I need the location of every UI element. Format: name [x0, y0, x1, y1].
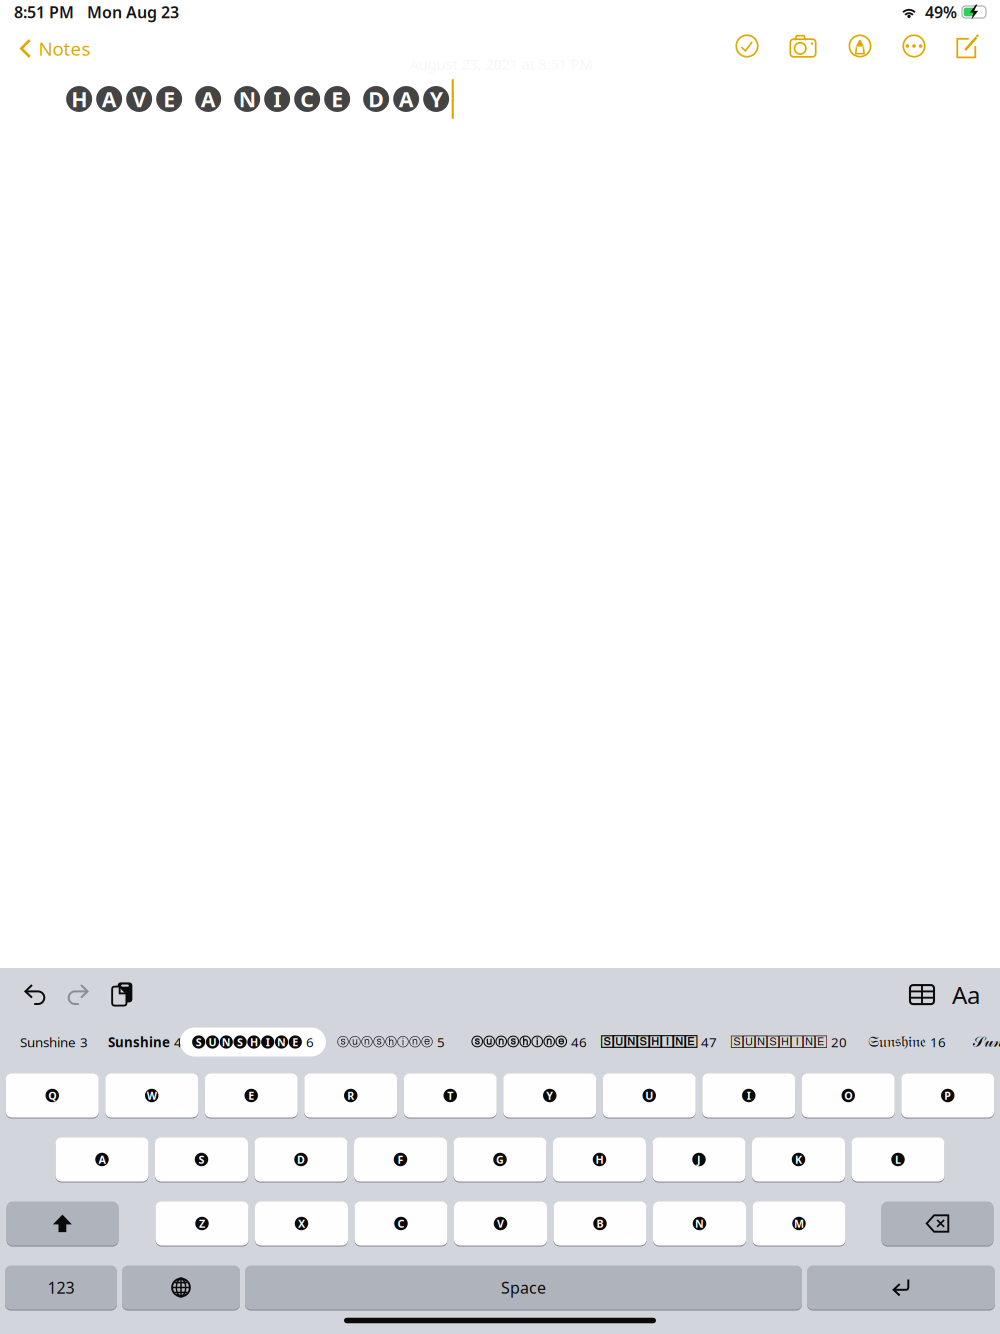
button[interactable]: H: [553, 1137, 646, 1181]
staticText: V: [132, 85, 146, 113]
staticText: A: [399, 85, 414, 113]
staticText: Mon Aug 23: [87, 1, 179, 23]
staticText: 3: [80, 1033, 88, 1051]
staticText: A: [201, 85, 216, 113]
button[interactable]: Return: [807, 1265, 995, 1309]
button[interactable]: New note: [947, 25, 989, 67]
staticText: N: [239, 85, 256, 113]
staticText: 47: [701, 1033, 717, 1051]
button[interactable]: ⓢⓤⓝⓢⓗⓘⓝⓔ: [335, 1027, 447, 1056]
button[interactable]: Next keyboard: [122, 1265, 240, 1309]
staticText: B: [596, 1216, 603, 1231]
button[interactable]: G: [453, 1137, 546, 1181]
button[interactable]: Space: [245, 1265, 802, 1309]
staticText: P: [944, 1088, 951, 1103]
staticText: O: [844, 1088, 852, 1103]
button[interactable]: Sunshine: [18, 1027, 90, 1056]
staticText: H: [71, 85, 87, 113]
button[interactable]: U: [603, 1073, 696, 1117]
button[interactable]: Done: [726, 25, 768, 67]
button[interactable]: Redo: [60, 977, 96, 1013]
button[interactable]: O: [802, 1073, 895, 1117]
button[interactable]: T: [404, 1073, 497, 1117]
button[interactable]: Insert photo: [782, 25, 824, 67]
staticText: I: [273, 85, 281, 113]
button[interactable]: N: [653, 1201, 746, 1245]
button[interactable]: D: [254, 1137, 347, 1181]
button[interactable]: ⓢⓤⓝⓢⓗⓘⓝⓔ: [469, 1027, 589, 1056]
button[interactable]: Notes: [8, 28, 102, 68]
staticText: 49%: [925, 1, 957, 23]
staticText: V: [497, 1216, 504, 1231]
staticText: T: [447, 1088, 453, 1103]
staticText: E: [292, 1035, 298, 1049]
staticText: A: [98, 1152, 105, 1167]
button[interactable]: F: [354, 1137, 447, 1181]
button[interactable]: K: [752, 1137, 845, 1181]
button[interactable]: Markup: [839, 25, 881, 67]
button[interactable]: E: [205, 1073, 298, 1117]
button[interactable]: C: [354, 1201, 447, 1245]
staticText: R: [347, 1088, 354, 1103]
staticText: E: [163, 85, 175, 113]
button[interactable]: Insert table: [904, 977, 940, 1013]
staticText: Q: [48, 1088, 56, 1103]
button[interactable]: V: [454, 1201, 547, 1245]
staticText: D: [297, 1152, 305, 1167]
button[interactable]: Z: [155, 1201, 248, 1245]
staticText: S: [196, 1035, 202, 1049]
button[interactable]: 🅂🅄🄽🅂🄷🄸🄽🄴: [599, 1027, 719, 1056]
staticText: 𝒮𝓊𝓃: [972, 1034, 1000, 1050]
button[interactable]: Paste: [104, 977, 140, 1013]
staticText: Z: [199, 1216, 205, 1231]
staticText: 16: [930, 1033, 946, 1051]
button[interactable]: Shift: [6, 1201, 118, 1245]
button[interactable]: Undo: [17, 977, 53, 1013]
staticText: Aa: [952, 979, 980, 1011]
button[interactable]: Numbers: [5, 1265, 117, 1309]
staticText: 20: [831, 1033, 847, 1051]
button[interactable]: R: [304, 1073, 397, 1117]
button[interactable]: M: [752, 1201, 845, 1245]
button[interactable]: B: [553, 1201, 646, 1245]
button[interactable]: L: [851, 1137, 944, 1181]
button[interactable]: P: [901, 1073, 994, 1117]
staticText: 6: [306, 1033, 314, 1051]
button[interactable]: I: [702, 1073, 795, 1117]
staticText: 🅂🅄🄽🅂🄷🄸🄽🄴: [601, 1037, 697, 1047]
staticText: N: [277, 1035, 286, 1049]
button[interactable]: S: [180, 1027, 326, 1056]
staticText: D: [368, 85, 384, 113]
staticText: 𝔖𝔲𝔫𝔰𝔥𝔦𝔫𝔢: [868, 1034, 926, 1050]
button[interactable]: Sunshine: [106, 1027, 184, 1056]
button[interactable]: W: [105, 1073, 198, 1117]
staticText: L: [895, 1152, 901, 1167]
staticText: 5: [437, 1033, 445, 1051]
staticText: E: [248, 1088, 254, 1103]
staticText: 8:51 PM: [14, 1, 74, 23]
staticText: S: [237, 1035, 243, 1049]
button[interactable]: Y: [503, 1073, 596, 1117]
staticText: ⓢⓤⓝⓢⓗⓘⓝⓔ: [471, 1035, 567, 1049]
button[interactable]: Q: [6, 1073, 99, 1117]
staticText: I: [747, 1088, 751, 1103]
button[interactable]: J: [652, 1137, 745, 1181]
button[interactable]: Delete: [881, 1201, 993, 1245]
staticText: M: [794, 1216, 804, 1231]
staticText: C: [397, 1216, 404, 1231]
button[interactable]: X: [255, 1201, 348, 1245]
staticText: 123: [47, 1277, 74, 1298]
button[interactable]: 𝔖𝔲𝔫𝔰𝔥𝔦𝔫𝔢: [866, 1027, 948, 1056]
staticText: H: [595, 1152, 603, 1167]
button[interactable]: 𝒮𝓊𝓃: [970, 1027, 1000, 1056]
staticText: Space: [501, 1277, 546, 1298]
staticText: A: [102, 85, 117, 113]
button[interactable]: A: [55, 1137, 148, 1181]
button[interactable]: Text format: [948, 977, 984, 1013]
button[interactable]: S: [155, 1137, 248, 1181]
button[interactable]: 🅂🅄🄽🅂🄷🄸🄽🄴: [729, 1027, 849, 1056]
staticText: ⓢⓤⓝⓢⓗⓘⓝⓔ: [337, 1035, 433, 1049]
button[interactable]: More: [893, 25, 935, 67]
staticText: S: [198, 1152, 204, 1167]
